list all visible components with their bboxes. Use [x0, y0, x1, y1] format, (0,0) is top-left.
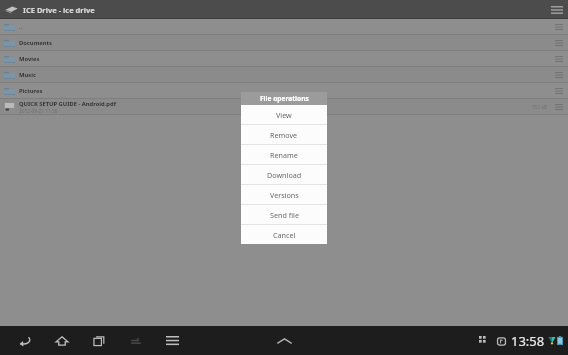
button[interactable]: Pictures — [0, 83, 568, 99]
button[interactable]: Home — [43, 326, 80, 355]
button[interactable]: Screenshot — [117, 326, 154, 355]
button[interactable]: .. — [0, 19, 568, 35]
staticText: QUICK SETUP GUIDE - Android.pdf — [19, 100, 116, 108]
button[interactable]: Reorder item — [553, 53, 565, 65]
button[interactable]: Music — [0, 67, 568, 83]
button[interactable]: Download — [241, 165, 327, 184]
button[interactable]: Reorder item — [553, 69, 565, 81]
staticText: 2012-09-21 11:56 — [19, 108, 58, 115]
staticText: ICE Drive - ice drive — [23, 5, 95, 15]
button[interactable]: Reorder item — [553, 37, 565, 49]
button[interactable]: Menu — [154, 326, 191, 355]
staticText: Send file — [270, 210, 299, 220]
staticText: Documents — [19, 39, 52, 47]
button[interactable]: Back — [6, 326, 43, 355]
button[interactable]: Menu — [547, 0, 566, 19]
button[interactable]: Cancel — [241, 225, 327, 244]
staticText: Download — [267, 170, 302, 180]
button[interactable]: Remove — [241, 125, 327, 144]
button[interactable]: Documents — [0, 35, 568, 51]
staticText: 13:58 — [511, 332, 545, 350]
staticText: .. — [19, 23, 23, 31]
staticText: Movies — [19, 55, 40, 63]
staticText: View — [276, 110, 292, 120]
staticText: Cancel — [273, 230, 296, 240]
button[interactable]: Hide navigation bar — [272, 326, 296, 355]
button[interactable]: Parallel window — [494, 334, 508, 348]
staticText: Music — [19, 71, 36, 79]
button[interactable]: Rename — [241, 145, 327, 164]
staticText: 701 kB — [532, 104, 548, 111]
button[interactable]: QUICK SETUP GUIDE - Android.pdf — [0, 99, 568, 115]
button[interactable]: Reorder item — [553, 101, 565, 113]
staticText: Versions — [270, 190, 299, 200]
button[interactable]: Recent apps — [80, 326, 117, 355]
staticText: File operations — [260, 94, 309, 103]
button[interactable]: Reorder item — [553, 21, 565, 33]
button[interactable]: Movies — [0, 51, 568, 67]
button[interactable]: Expand — [475, 332, 492, 349]
button[interactable]: Reorder item — [553, 85, 565, 97]
staticText: Remove — [270, 130, 298, 140]
button[interactable]: Send file — [241, 205, 327, 224]
button[interactable]: Versions — [241, 185, 327, 204]
staticText: Pictures — [19, 87, 43, 95]
button[interactable]: View — [241, 105, 327, 124]
staticText: Rename — [270, 150, 298, 160]
